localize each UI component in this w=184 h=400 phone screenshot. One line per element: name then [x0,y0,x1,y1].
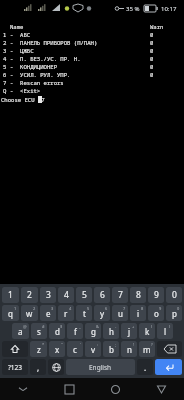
staticText: Warn [150,23,164,31]
button[interactable]: 5 [76,287,92,303]
button[interactable]: u [112,305,128,321]
staticText: 9 [159,306,162,311]
staticText: 6 [100,289,105,301]
button[interactable]: y [94,305,110,321]
staticText: 8 [136,289,141,301]
staticText: u [118,308,123,319]
staticText: p [172,308,177,319]
staticText: 3 [3,47,7,55]
staticText: - Rescan errors [10,79,64,87]
button[interactable]: 0 [166,287,182,303]
staticText: 2 [3,39,7,47]
button[interactable]: r [58,305,74,321]
staticText: - [115,324,117,329]
staticText: ! [133,342,135,347]
staticText: 9 [154,289,159,301]
button[interactable]: z [30,341,47,357]
staticText: f [74,326,77,337]
staticText: 3 [46,289,51,301]
button[interactable]: c [67,341,83,357]
staticText: 3 [51,306,54,311]
staticText: _ [79,324,81,329]
staticText: 5 [87,306,90,311]
button[interactable]: t [76,305,92,321]
button[interactable]: Back [138,378,184,400]
staticText: h [109,326,114,337]
staticText: 0 [172,289,177,301]
staticText: x [55,344,60,355]
button[interactable]: g [85,323,101,339]
button[interactable]: f [67,323,83,339]
button[interactable]: n [121,341,137,357]
button[interactable]: Hide keyboard [0,378,46,400]
staticText: " [61,342,63,347]
staticText: 1 [8,289,13,301]
staticText: k [145,326,150,337]
staticText: 7 [3,79,7,87]
staticText: w [26,308,33,319]
button[interactable]: , [30,359,46,375]
button[interactable]: Language [48,359,64,375]
staticText: Choose ECU :7 [1,96,45,104]
staticText: 35 % [126,5,140,13]
button[interactable]: 2 [21,287,38,303]
staticText: 5 [82,289,87,301]
button[interactable]: Recent apps [46,378,92,400]
button[interactable]: Shift [2,341,28,357]
button[interactable]: 1 [2,287,19,303]
staticText: a [18,326,23,337]
staticText: t [83,308,86,319]
staticText: 4 [69,306,72,311]
staticText: q [8,308,13,319]
button[interactable]: x [49,341,65,357]
staticText: $ [60,324,63,329]
button[interactable]: English [66,359,135,375]
button[interactable]: a [12,323,29,339]
button[interactable]: m [139,341,155,357]
button[interactable]: w [21,305,38,321]
button[interactable]: 9 [148,287,164,303]
button[interactable]: s [31,323,47,339]
staticText: 5 [3,63,7,71]
staticText: 0 [177,306,180,311]
button[interactable]: o [148,305,164,321]
staticText: 0 [150,47,154,55]
staticText: s [37,326,41,337]
button[interactable]: Backspace [157,341,182,357]
staticText: r [64,308,68,319]
button[interactable]: 8 [130,287,146,303]
staticText: d [55,326,60,337]
button[interactable]: . [137,359,153,375]
button[interactable]: i [130,305,146,321]
staticText: 1 [14,306,17,311]
staticText: 7 [123,306,126,311]
button[interactable]: b [103,341,119,357]
button[interactable]: Enter [155,359,182,375]
button[interactable]: e [40,305,56,321]
button[interactable]: Home [92,378,138,400]
staticText: 0 [150,55,154,63]
button[interactable]: v [85,341,101,357]
button[interactable]: q [2,305,19,321]
button[interactable]: h [103,323,119,339]
button[interactable]: 3 [40,287,56,303]
button[interactable]: ?123 [2,359,28,375]
staticText: . [144,362,147,373]
staticText: 0 [150,63,154,71]
staticText: ' [80,342,81,347]
staticText: n [127,344,132,355]
button[interactable]: 4 [58,287,74,303]
button[interactable]: 6 [94,287,110,303]
button[interactable]: l [157,323,173,339]
staticText: - УСИЛ. РУЛ. УПР. [10,71,71,79]
staticText: i [137,308,140,319]
button[interactable]: 7 [112,287,128,303]
staticText: - ЦЖБС [10,47,34,55]
button[interactable]: k [139,323,155,339]
button[interactable]: j [121,323,137,339]
button[interactable]: p [166,305,182,321]
staticText: 10:17 [161,5,177,13]
staticText: ) [169,324,171,329]
staticText: 4 [64,289,69,301]
button[interactable]: d [49,323,65,339]
